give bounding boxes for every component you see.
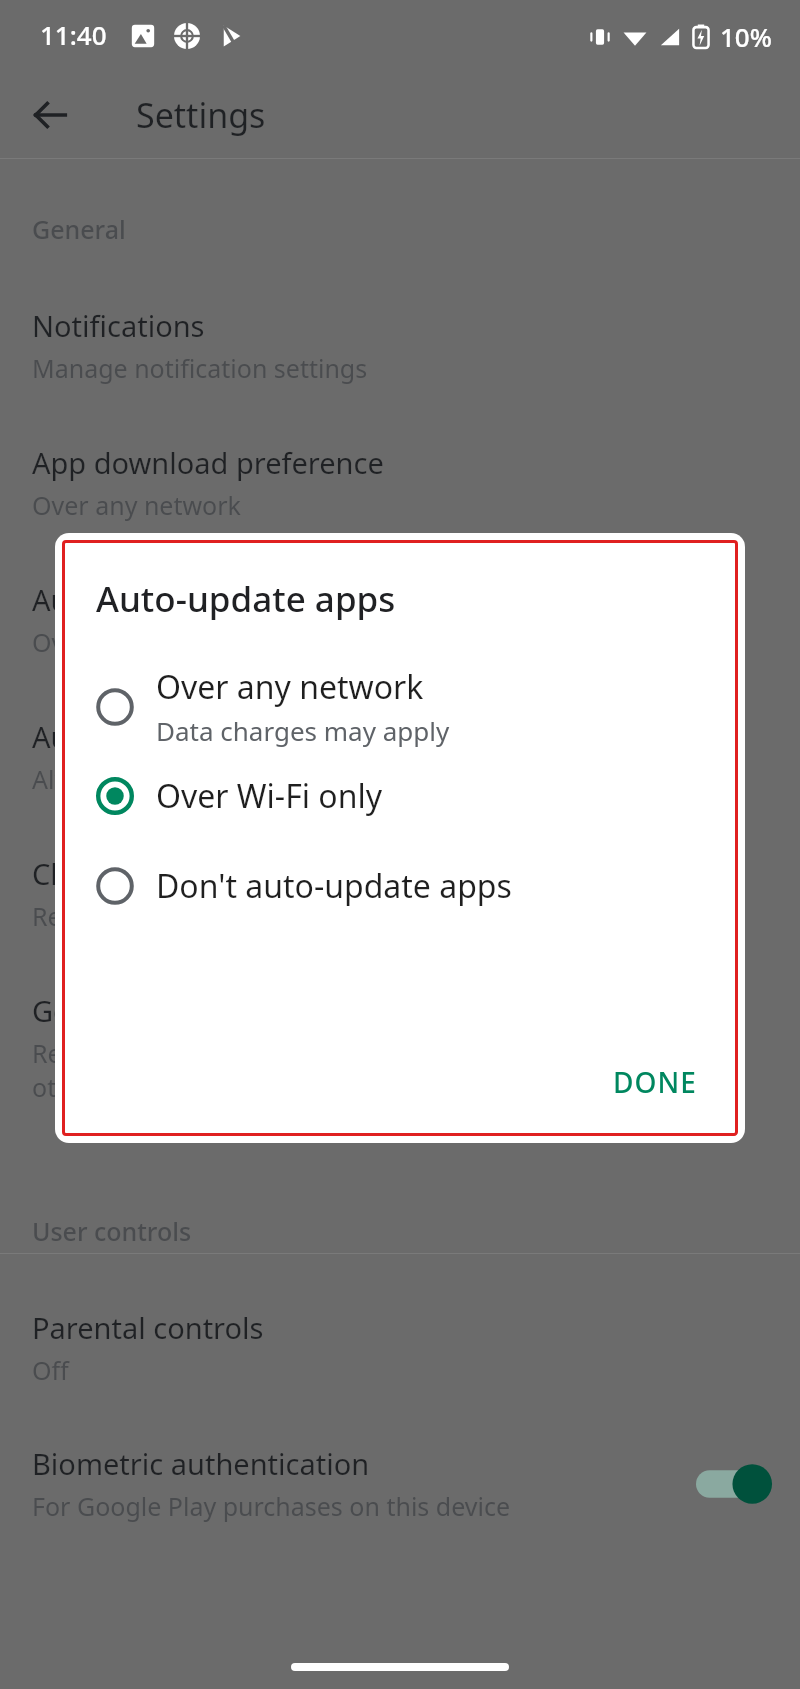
button[interactable]: Parental controls bbox=[0, 1306, 800, 1395]
staticText: App download preference bbox=[32, 443, 384, 482]
button[interactable]: Back bbox=[22, 87, 78, 143]
staticText: DONE bbox=[613, 1063, 697, 1101]
button[interactable]: Auto-play videos bbox=[0, 715, 800, 804]
staticText: Off bbox=[32, 1353, 69, 1387]
staticText: Manage notification settings bbox=[32, 351, 368, 385]
staticText: Biometric authentication bbox=[32, 1444, 370, 1483]
staticText: 11:40 bbox=[40, 17, 107, 52]
staticText: Over any network bbox=[156, 665, 424, 709]
staticText: Removes searches you've done on Google P… bbox=[32, 899, 580, 933]
staticText: Notifications bbox=[32, 306, 205, 345]
button[interactable]: Over Wi-Fi only bbox=[55, 768, 745, 824]
staticText: Rearrange and customise your Google Play… bbox=[32, 1036, 653, 1104]
button[interactable]: DONE bbox=[593, 1049, 717, 1115]
button[interactable]: Over any network bbox=[55, 659, 745, 754]
staticText: User controls bbox=[32, 1214, 192, 1248]
staticText: Always on bbox=[32, 762, 150, 796]
staticText: General bbox=[32, 212, 126, 246]
staticText: Auto-update apps bbox=[32, 580, 276, 619]
staticText: Settings bbox=[136, 92, 266, 138]
button[interactable]: Notifications bbox=[0, 304, 800, 393]
staticText: General preference bbox=[32, 991, 295, 1030]
staticText: Auto-update apps bbox=[96, 575, 396, 623]
staticText: For Google Play purchases on this device bbox=[32, 1489, 511, 1523]
button[interactable]: Don't auto-update apps bbox=[55, 858, 745, 914]
staticText: Parental controls bbox=[32, 1308, 264, 1347]
staticText: 10% bbox=[720, 19, 772, 54]
button[interactable]: Biometric authentication bbox=[0, 1444, 800, 1523]
staticText: Clear local search history bbox=[32, 854, 372, 893]
button[interactable]: General preference bbox=[0, 989, 800, 1112]
button[interactable]: Clear local search history bbox=[0, 852, 800, 941]
staticText: Don't auto-update apps bbox=[156, 864, 512, 908]
staticText: Over Wi-Fi only bbox=[156, 774, 383, 818]
staticText: Data charges may apply bbox=[156, 713, 450, 748]
button[interactable]: App download preference bbox=[0, 441, 800, 530]
staticText: Auto-play videos bbox=[32, 717, 258, 756]
button[interactable]: Auto-update apps bbox=[0, 578, 800, 667]
staticText: Over any network bbox=[32, 488, 241, 522]
staticText: Over Wi-Fi only bbox=[32, 625, 209, 659]
